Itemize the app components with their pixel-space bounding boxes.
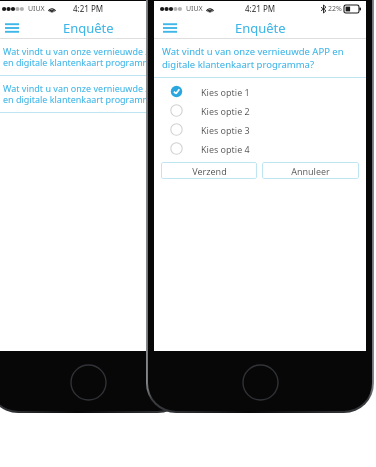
staticText: Kies optie 1	[201, 86, 250, 98]
staticText: Kies optie 2	[201, 105, 250, 117]
staticText: UIUX	[28, 4, 45, 14]
staticText: Annuleer	[291, 165, 330, 177]
button[interactable]: Verzend	[161, 162, 257, 179]
staticText: Wat vindt u van onze vernieuwde APP en d…	[162, 45, 358, 71]
button[interactable]: Kies optie 4	[154, 139, 366, 158]
button[interactable]: Kies optie 2	[154, 101, 366, 120]
staticText: 4:21 PM	[245, 3, 276, 14]
staticText: Enquête	[235, 19, 286, 37]
staticText: Wat vindt u van onze vernieuwde APP en d…	[3, 82, 173, 106]
staticText: UIUX	[186, 4, 203, 14]
button[interactable]: Wat vindt u van onze vernieuwde APP en d…	[154, 39, 366, 77]
staticText: Wat vindt u van onze vernieuwde APP en d…	[3, 45, 173, 69]
staticText: 4:21 PM	[73, 3, 104, 14]
button[interactable]: Kies optie 3	[154, 120, 366, 139]
button[interactable]: Kies optie 1	[154, 82, 366, 101]
button[interactable]: Wat vindt u van onze vernieuwde APP en d…	[0, 39, 180, 75]
button[interactable]: Annuleer	[262, 162, 359, 179]
staticText: 22%	[328, 4, 342, 14]
staticText: Enquête	[63, 19, 114, 37]
button[interactable]: Menu	[0, 16, 24, 39]
button[interactable]: Menu	[158, 16, 182, 39]
staticText: Verzend	[192, 165, 227, 177]
staticText: Kies optie 4	[201, 143, 250, 155]
button[interactable]: Wat vindt u van onze vernieuwde APP en d…	[0, 76, 180, 112]
staticText: Kies optie 3	[201, 124, 250, 136]
